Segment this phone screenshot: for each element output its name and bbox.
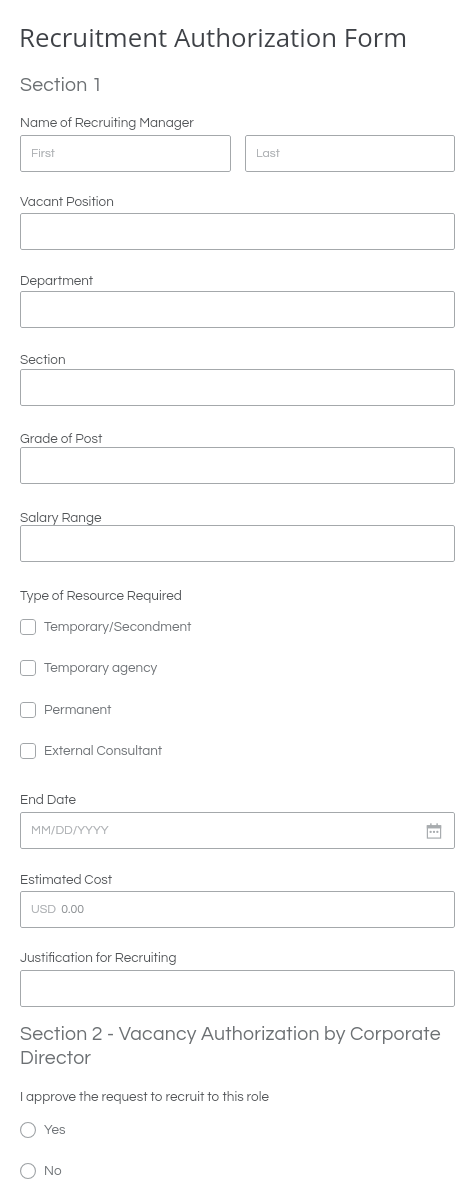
staticText: Last xyxy=(256,147,280,160)
staticText: Vacant Position xyxy=(20,195,114,209)
button[interactable]: MM/DD/YYYY xyxy=(20,812,455,849)
button[interactable]: First xyxy=(20,135,231,172)
button[interactable]: External Consultant xyxy=(20,731,320,771)
button[interactable] xyxy=(20,970,455,1007)
button[interactable] xyxy=(20,213,455,250)
staticText: USD 0.00 xyxy=(31,903,84,916)
other: Open calendar xyxy=(426,823,442,839)
button[interactable]: Last xyxy=(245,135,455,172)
staticText: Salary Range xyxy=(20,511,102,525)
staticText: Section 1 xyxy=(20,75,103,95)
button[interactable]: Yes xyxy=(20,1110,220,1150)
staticText: No xyxy=(44,1164,62,1178)
button[interactable] xyxy=(20,525,455,562)
staticText: Yes xyxy=(44,1123,66,1137)
button[interactable]: Temporary agency xyxy=(20,648,320,688)
button[interactable] xyxy=(20,291,455,328)
button[interactable]: USD 0.00 xyxy=(20,891,455,928)
staticText: Permanent xyxy=(44,703,112,717)
staticText: Estimated Cost xyxy=(20,873,113,887)
staticText: Department xyxy=(20,274,94,288)
staticText: Type of Resource Required xyxy=(20,589,182,603)
staticText: I approve the request to recruit to this… xyxy=(20,1090,269,1104)
staticText: Justification for Recruiting xyxy=(20,951,177,965)
staticText: Temporary agency xyxy=(44,661,158,675)
staticText: Section 2 - Vacancy Authorization by Cor… xyxy=(20,1024,460,1068)
staticText: MM/DD/YYYY xyxy=(31,824,109,837)
staticText: Name of Recruiting Manager xyxy=(20,116,194,130)
staticText: Temporary/Secondment xyxy=(44,620,192,634)
staticText: Recruitment Authorization Form xyxy=(19,19,408,54)
button[interactable] xyxy=(20,369,455,406)
button[interactable]: No xyxy=(20,1151,220,1191)
staticText: Grade of Post xyxy=(20,432,103,446)
button[interactable]: Temporary/Secondment xyxy=(20,607,320,647)
staticText: External Consultant xyxy=(44,744,163,758)
staticText: First xyxy=(31,147,55,160)
button[interactable] xyxy=(20,447,455,484)
button[interactable]: Permanent xyxy=(20,690,320,730)
staticText: Section xyxy=(20,353,66,367)
staticText: End Date xyxy=(20,793,77,807)
